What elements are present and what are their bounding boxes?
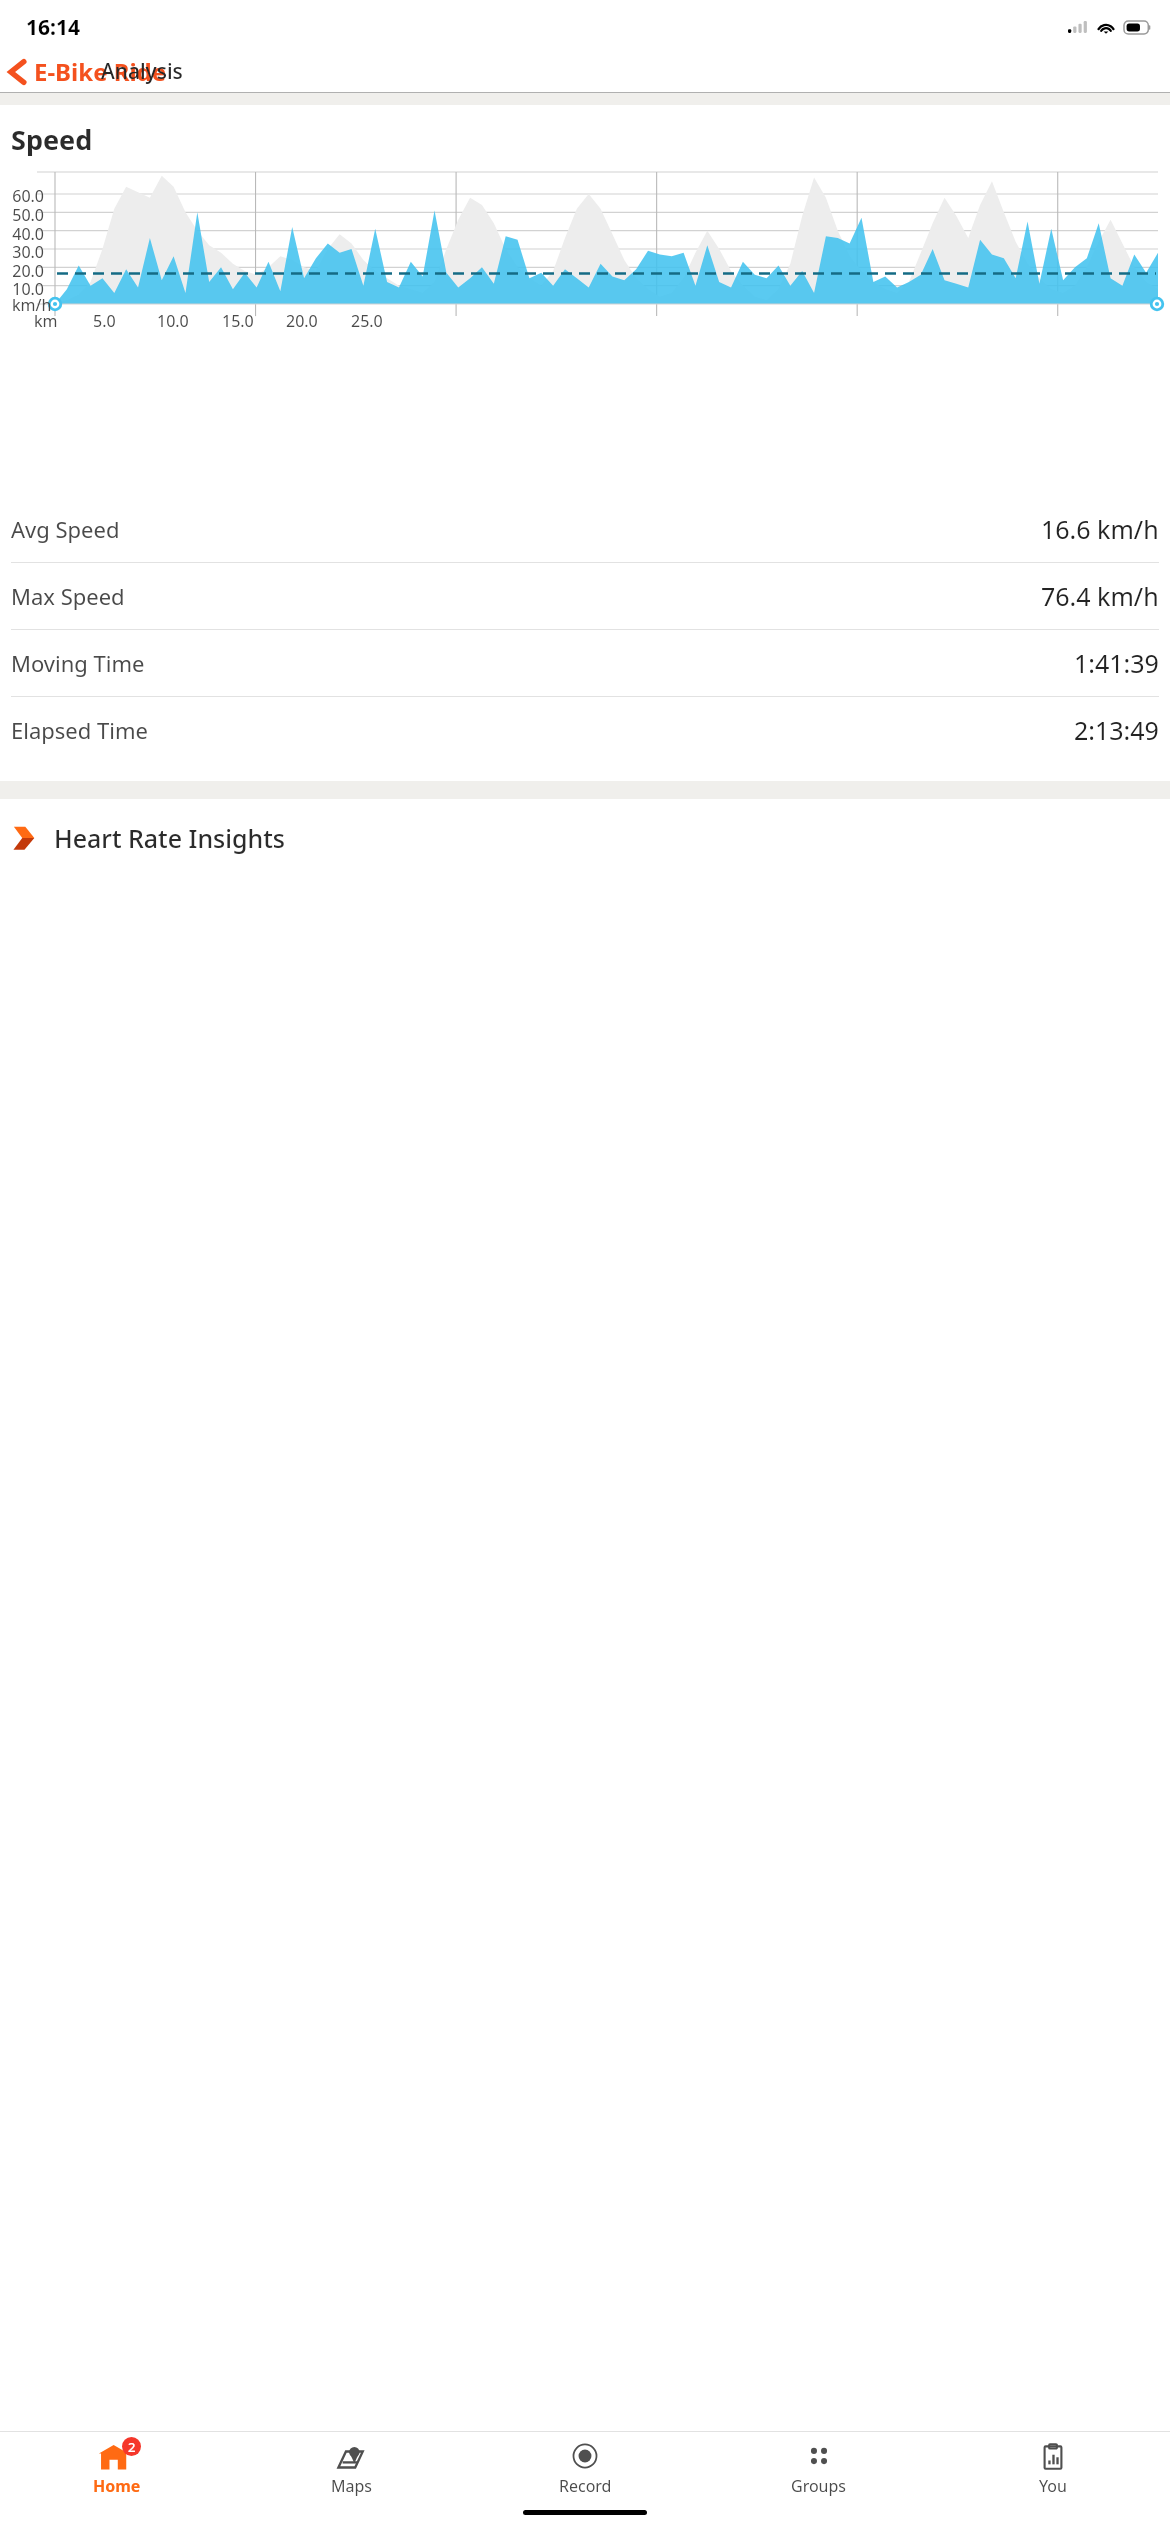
other: Back [8,59,26,85]
staticText: E-Bike Ride [34,55,167,88]
button[interactable]: Record [468,2432,702,2504]
staticText: 1:41:39 [1074,646,1159,680]
staticText: 2:13:49 [1074,713,1159,747]
staticText: 16:14 [26,13,80,42]
staticText: 40.0 [12,223,44,245]
button[interactable]: Avg Speed [0,496,1170,563]
staticText: 2 [128,2438,136,2456]
staticText: 20.0 [12,260,44,282]
staticText: 50.0 [12,204,44,226]
staticText: Record [559,2475,612,2497]
staticText: 60.0 [12,185,44,207]
staticText: 10.0 [12,278,44,300]
staticText: 16.6 km/h [1041,512,1159,546]
button[interactable]: You [936,2432,1170,2504]
staticText: Home [93,2475,141,2497]
staticText: 15.0 [222,310,254,332]
staticText: 10.0 [157,310,189,332]
staticText: 20.0 [286,310,318,332]
staticText: Groups [791,2475,847,2497]
button[interactable]: Maps [234,2432,468,2504]
button[interactable]: Back [0,51,173,92]
staticText: You [1039,2475,1067,2497]
staticText: 76.4 km/h [1041,579,1159,613]
staticText: Heart Rate Insights [54,821,285,855]
button[interactable]: Elapsed Time [0,697,1170,763]
staticText: Avg Speed [11,514,120,544]
staticText: Elapsed Time [11,715,148,745]
button[interactable]: 2 [0,2432,234,2504]
button[interactable]: Heart Rate Insights [0,799,1170,877]
staticText: Maps [331,2475,372,2497]
staticText: Moving Time [11,648,145,678]
button[interactable]: Groups [702,2432,936,2504]
staticText: km [34,310,58,332]
staticText: 25.0 [351,310,383,332]
button[interactable]: Moving Time [0,630,1170,697]
button[interactable]: Max Speed [0,563,1170,630]
staticText: 5.0 [93,310,116,332]
staticText: Analysis [101,57,183,86]
staticText: Max Speed [11,581,125,611]
staticText: 30.0 [12,241,44,263]
staticText: Speed [11,121,93,158]
staticText: km/h [12,294,52,316]
